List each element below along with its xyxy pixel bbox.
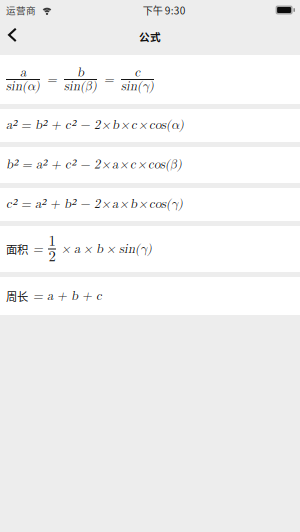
button[interactable]: Back (0, 20, 34, 55)
staticText: = (104, 73, 114, 86)
staticText: c² = a² + b² − 2 × a × b × cos(γ) (6, 198, 183, 211)
staticText: c (134, 66, 140, 79)
staticText: 周长 (6, 288, 28, 304)
staticText: 下午 9:30 (143, 3, 186, 17)
staticText: sin(β) (64, 80, 97, 93)
staticText: sin(γ) (121, 80, 154, 93)
staticText: 公式 (139, 29, 161, 44)
staticText: b² = a² + c² − 2 × a × c × cos(β) (6, 158, 182, 172)
staticText: a² = b² + c² − 2 × b × c × cos(α) (6, 119, 184, 132)
staticText: 2 (48, 249, 55, 264)
staticText: × a × b × sin(γ) (61, 243, 152, 255)
staticText: sin(α) (6, 80, 40, 93)
staticText: = a + b + c (33, 290, 102, 302)
staticText: = (47, 73, 57, 86)
staticText: a (20, 66, 26, 79)
staticText: 运营商 (6, 3, 36, 17)
staticText: 面积 (6, 241, 28, 257)
staticText: b (77, 66, 84, 79)
staticText: 1 (48, 234, 55, 248)
staticText: = (33, 243, 43, 255)
